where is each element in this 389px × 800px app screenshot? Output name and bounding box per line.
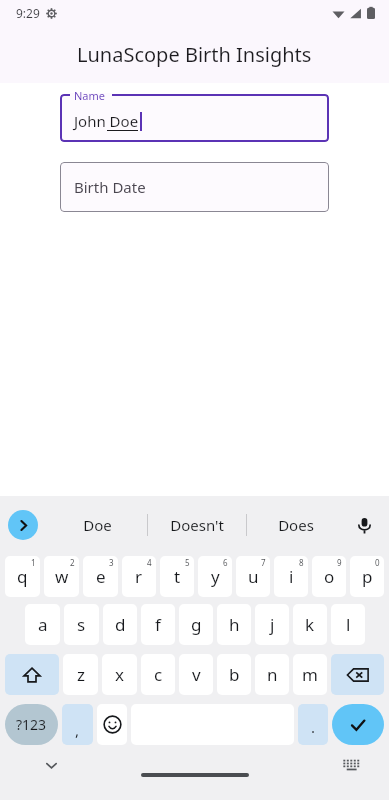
button[interactable]: l [331, 604, 365, 645]
button[interactable]: v [179, 654, 213, 695]
button[interactable]: Backspace [331, 654, 384, 695]
button[interactable]: More suggestions [8, 510, 38, 540]
staticText: g [191, 613, 202, 636]
staticText: Doesn't [170, 515, 224, 535]
staticText: 5 [185, 557, 190, 568]
staticText: f [155, 613, 161, 636]
button[interactable]: Done [332, 704, 384, 745]
staticText: 0 [375, 557, 380, 568]
staticText: o [324, 565, 335, 588]
button[interactable]: Shift [5, 654, 59, 695]
button[interactable]: Name [60, 94, 329, 142]
button[interactable]: Doe [48, 503, 147, 547]
staticText: r [135, 565, 143, 588]
button[interactable]: x [102, 654, 137, 695]
staticText: 9:29 [16, 5, 40, 21]
staticText: p [362, 565, 373, 588]
button[interactable]: m [293, 654, 327, 695]
staticText: 6 [223, 557, 228, 568]
button[interactable]: c [141, 654, 175, 695]
button[interactable]: r [122, 556, 156, 597]
button[interactable]: f [141, 604, 175, 645]
staticText: d [115, 613, 126, 636]
button[interactable]: q [5, 556, 40, 597]
button[interactable]: j [255, 604, 289, 645]
button[interactable]: b [217, 654, 251, 695]
button[interactable]: s [64, 604, 99, 645]
button[interactable]: . [298, 704, 328, 745]
staticText: b [229, 663, 240, 686]
button[interactable]: Doesn't [148, 503, 246, 547]
button[interactable]: g [179, 604, 213, 645]
button[interactable]: u [236, 556, 270, 597]
staticText: l [346, 613, 351, 636]
staticText: y [211, 565, 220, 588]
staticText: u [248, 565, 259, 588]
staticText: 7 [261, 557, 266, 568]
button[interactable]: ?123 [5, 704, 58, 745]
staticText: John Doe [74, 111, 139, 131]
staticText: n [267, 663, 278, 686]
staticText: 1 [31, 557, 36, 568]
staticText: . [311, 717, 316, 737]
staticText: x [115, 663, 124, 686]
button[interactable]: Emoji [97, 704, 127, 745]
button[interactable]: Birth Date [60, 162, 329, 212]
button[interactable]: d [103, 604, 137, 645]
staticText: 9 [337, 557, 342, 568]
staticText: t [174, 565, 181, 588]
staticText: Name [74, 88, 106, 103]
staticText: c [154, 663, 163, 686]
staticText: Does [278, 515, 314, 535]
staticText: z [77, 663, 85, 686]
button[interactable]: p [350, 556, 384, 597]
staticText: LunaScope Birth Insights [77, 41, 312, 68]
button[interactable]: y [198, 556, 232, 597]
staticText: a [38, 613, 48, 636]
staticText: 3 [109, 557, 114, 568]
staticText: w [55, 565, 69, 588]
staticText: 4 [147, 557, 152, 568]
staticText: h [229, 613, 240, 636]
button[interactable]: o [312, 556, 346, 597]
staticText: 2 [70, 557, 75, 568]
button[interactable]: Voice input [349, 510, 379, 540]
staticText: Doe [83, 515, 112, 535]
button[interactable]: Does [247, 503, 345, 547]
staticText: v [192, 663, 201, 686]
button[interactable]: z [63, 654, 98, 695]
button[interactable]: , [62, 704, 93, 745]
button[interactable]: w [44, 556, 79, 597]
staticText: s [77, 613, 86, 636]
button[interactable]: e [83, 556, 118, 597]
staticText: k [305, 613, 315, 636]
button[interactable]: t [160, 556, 194, 597]
button[interactable]: k [293, 604, 327, 645]
button[interactable]: h [217, 604, 251, 645]
staticText: 8 [299, 557, 304, 568]
button[interactable]: Hide keyboard [38, 752, 64, 778]
staticText: , [75, 720, 80, 740]
staticText: j [270, 613, 275, 636]
button[interactable]: a [25, 604, 60, 645]
staticText: e [96, 565, 106, 588]
button[interactable]: n [255, 654, 289, 695]
staticText: q [17, 565, 28, 588]
staticText: m [302, 663, 318, 686]
button[interactable]: i [274, 556, 308, 597]
staticText: i [289, 565, 294, 588]
staticText: Birth Date [74, 177, 146, 197]
staticText: ?123 [16, 715, 47, 734]
button[interactable]: Switch keyboard [338, 752, 364, 778]
